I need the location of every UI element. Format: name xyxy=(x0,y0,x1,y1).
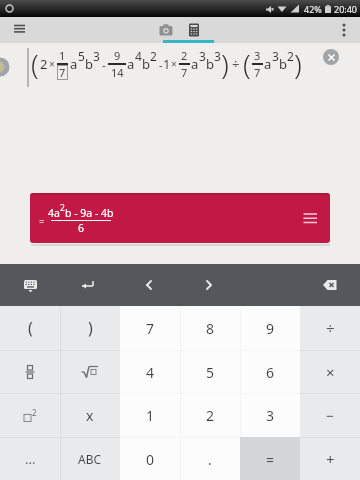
button[interactable]: = xyxy=(240,437,300,480)
button[interactable]: 1 xyxy=(120,393,180,437)
staticText: a xyxy=(127,55,135,73)
staticText: 5 xyxy=(206,363,215,382)
button[interactable]: 4 xyxy=(120,350,180,394)
staticText: 3 xyxy=(199,48,206,64)
staticText: 3 xyxy=(93,48,100,64)
staticText: 3 xyxy=(214,48,221,64)
staticText: 5 xyxy=(78,48,85,64)
button[interactable]: 3 xyxy=(240,393,300,437)
button[interactable]: ... xyxy=(0,437,60,480)
staticText: 1 xyxy=(59,48,66,63)
staticText: 3 xyxy=(254,48,261,63)
button[interactable] xyxy=(323,49,339,65)
staticText: 7 xyxy=(181,65,188,80)
staticText: 7 xyxy=(146,319,155,338)
staticText: ÷ xyxy=(232,55,240,73)
button[interactable]: + xyxy=(300,437,360,480)
staticText: b xyxy=(279,55,287,73)
staticText: ) xyxy=(88,317,93,339)
staticText: 1 xyxy=(146,406,155,425)
button[interactable]: 2 xyxy=(0,393,60,437)
button[interactable]: x xyxy=(60,393,120,437)
button[interactable]: 7 xyxy=(120,306,180,350)
button[interactable] xyxy=(195,271,223,299)
staticText: b xyxy=(206,55,214,73)
staticText: 2 xyxy=(60,202,65,214)
staticText: 7 xyxy=(254,65,261,80)
staticText: ... xyxy=(25,450,36,468)
staticText: ) xyxy=(221,45,229,83)
staticText: 4 xyxy=(135,48,142,64)
staticText: 4 xyxy=(146,363,155,382)
button[interactable]: 6 xyxy=(240,350,300,394)
staticText: 4a xyxy=(48,206,60,220)
staticText: 3 xyxy=(272,48,279,64)
staticText: 2 xyxy=(40,55,48,73)
button[interactable] xyxy=(334,20,354,40)
button[interactable] xyxy=(135,271,163,299)
button[interactable]: = xyxy=(30,193,330,243)
button[interactable] xyxy=(8,18,32,42)
staticText: ÷ xyxy=(326,318,335,338)
staticText: 0 xyxy=(146,450,155,469)
staticText: . xyxy=(208,450,212,469)
staticText: - xyxy=(102,57,106,72)
staticText: 42% xyxy=(304,3,322,15)
staticText: = xyxy=(39,215,45,227)
staticText: - xyxy=(159,57,163,72)
staticText: 2 xyxy=(181,48,188,63)
button[interactable]: ) xyxy=(60,306,120,350)
button[interactable] xyxy=(60,350,120,394)
staticText: × xyxy=(49,57,55,71)
staticText: ( xyxy=(28,317,33,339)
button[interactable]: 5 xyxy=(180,350,240,394)
staticText: − xyxy=(326,406,335,425)
button[interactable]: ABC xyxy=(60,437,120,480)
button[interactable]: 2 xyxy=(180,393,240,437)
button[interactable] xyxy=(153,17,179,43)
staticText: 2 xyxy=(287,48,294,64)
staticText: ( xyxy=(31,45,39,83)
button[interactable] xyxy=(74,271,102,299)
staticText: b - 9a - 4b xyxy=(65,206,114,220)
staticText: 9 xyxy=(114,48,121,63)
staticText: ( xyxy=(243,45,251,83)
staticText: 2 xyxy=(150,48,157,64)
button[interactable] xyxy=(316,271,344,299)
staticText: + xyxy=(326,449,335,469)
button[interactable]: 0 xyxy=(120,437,180,480)
staticText: x xyxy=(86,406,94,425)
staticText: ) xyxy=(294,45,302,83)
staticText: a xyxy=(264,55,272,73)
button[interactable]: ÷ xyxy=(300,306,360,350)
staticText: a xyxy=(191,55,199,73)
staticText: × xyxy=(171,57,177,71)
staticText: b xyxy=(85,55,93,73)
staticText: 9 xyxy=(266,319,275,338)
staticText: 2 xyxy=(206,406,215,425)
staticText: 7 xyxy=(59,65,66,80)
button[interactable]: × xyxy=(300,350,360,394)
staticText: 6 xyxy=(78,221,85,235)
button[interactable]: . xyxy=(180,437,240,480)
button[interactable]: 8 xyxy=(180,306,240,350)
staticText: ABC xyxy=(78,451,102,467)
button[interactable]: − xyxy=(300,393,360,437)
button[interactable] xyxy=(16,271,44,299)
button[interactable]: 9 xyxy=(240,306,300,350)
button[interactable] xyxy=(181,17,207,43)
button[interactable] xyxy=(0,350,60,394)
staticText: b xyxy=(142,55,150,73)
button[interactable]: ( xyxy=(0,306,60,350)
staticText: 8 xyxy=(206,319,215,338)
staticText: × xyxy=(326,362,335,382)
staticText: 20:40 xyxy=(334,3,358,15)
staticText: 2 xyxy=(32,407,37,418)
staticText: 3 xyxy=(266,406,275,425)
staticText: = xyxy=(266,450,275,469)
staticText: a xyxy=(70,55,78,73)
staticText: 1 xyxy=(163,55,171,73)
staticText: 6 xyxy=(266,363,275,382)
staticText: 14 xyxy=(111,65,124,80)
